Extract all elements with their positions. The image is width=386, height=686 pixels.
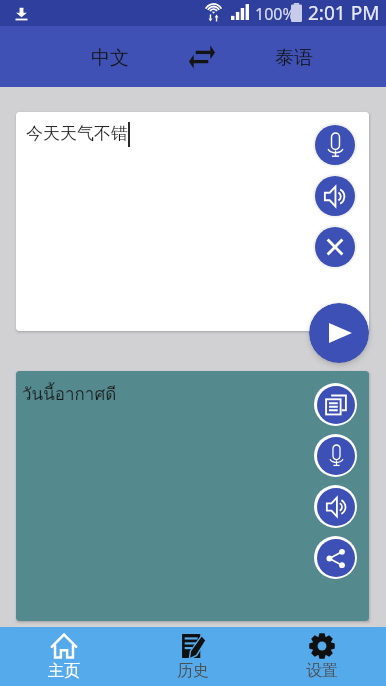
button[interactable]: Speak translation <box>314 485 357 528</box>
staticText: 泰语 <box>275 46 313 70</box>
button[interactable]: Voice <box>314 434 357 477</box>
button[interactable]: Copy translation <box>314 383 357 426</box>
staticText: 今天天气不错 <box>26 123 128 144</box>
button[interactable]: Speak <box>315 176 355 216</box>
button[interactable]: Voice input <box>315 125 355 165</box>
button[interactable]: 主页 <box>0 627 128 686</box>
staticText: 100% <box>255 3 296 25</box>
button[interactable]: Clear text <box>315 227 355 267</box>
staticText: 设置 <box>306 661 338 681</box>
staticText: 历史 <box>177 661 209 681</box>
button[interactable]: 设置 <box>257 627 386 686</box>
button[interactable]: Share <box>314 536 357 579</box>
staticText: 主页 <box>48 661 80 681</box>
staticText: 中文 <box>91 46 129 70</box>
button[interactable]: Swap languages <box>176 26 228 87</box>
button[interactable]: 泰语 <box>254 26 334 87</box>
button[interactable]: 历史 <box>128 627 257 686</box>
button[interactable]: Translate <box>309 303 369 363</box>
staticText: วันนี้อากาศดี <box>22 380 117 407</box>
staticText: 2:01 PM <box>308 0 380 26</box>
button[interactable]: 中文 <box>70 26 150 87</box>
